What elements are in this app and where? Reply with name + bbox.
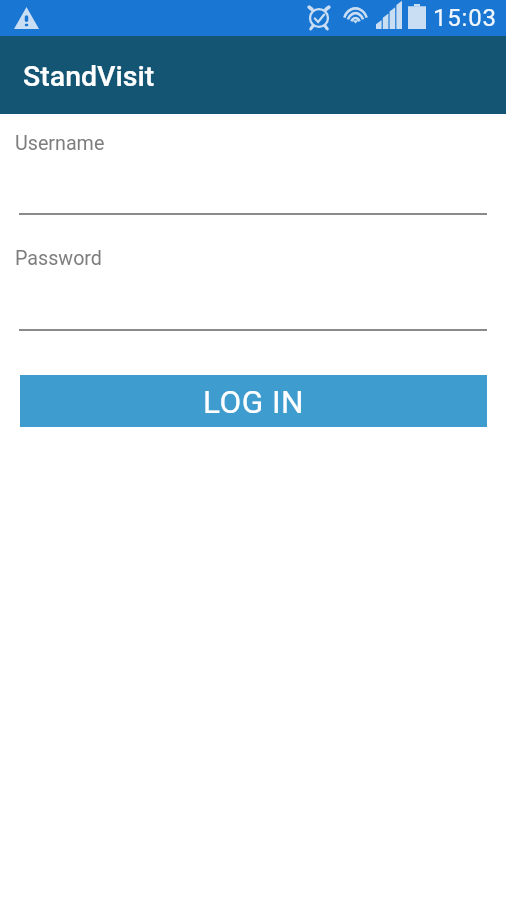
other: Battery full	[408, 4, 426, 29]
other: Alarm set	[306, 4, 332, 29]
button[interactable]: LOG IN	[20, 375, 487, 427]
other: Wi-Fi connected	[342, 5, 369, 24]
button[interactable]: Username	[0, 126, 506, 215]
other: Mobile signal strength	[376, 5, 402, 29]
staticText: Username	[15, 132, 105, 155]
staticText: StandVisit	[23, 60, 155, 93]
staticText: 15:03	[433, 4, 497, 32]
button[interactable]: Password	[0, 241, 506, 331]
staticText: Password	[15, 247, 102, 270]
other: Warning notification	[14, 7, 39, 29]
staticText: LOG IN	[203, 384, 304, 421]
